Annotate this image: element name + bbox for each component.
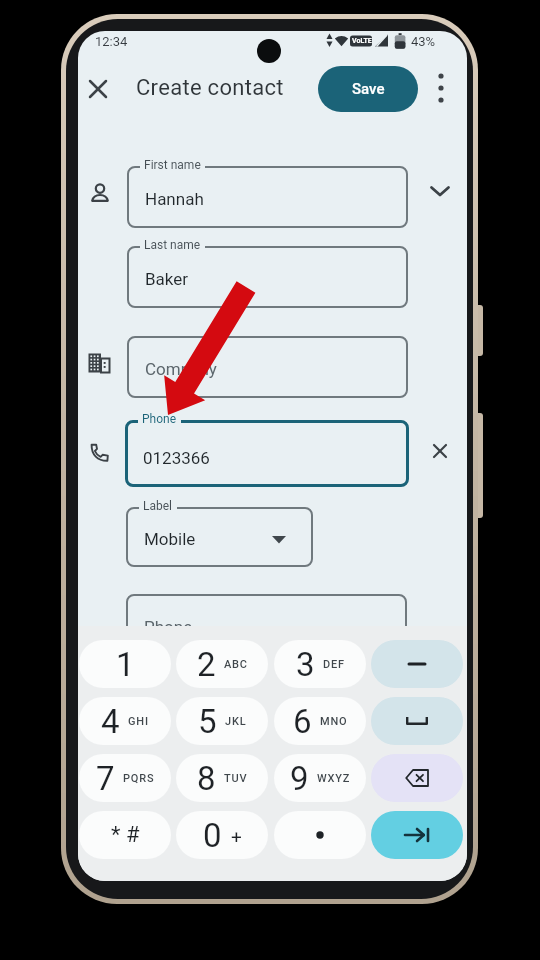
staticText: 8 [197,759,216,798]
staticText: TUV [224,772,248,785]
staticText: First name [144,158,201,172]
staticText: Mobile [144,529,196,549]
staticText: WXYZ [317,772,351,785]
button[interactable]: 3 [274,640,366,688]
staticText: 6 [293,702,312,741]
staticText: 1 [116,645,135,684]
button[interactable]: Mobile [126,507,313,567]
staticText: 4 [101,702,120,741]
staticText: + [231,825,242,847]
staticText: Hannah [145,189,204,209]
button[interactable]: Phone [126,594,407,656]
button[interactable] [371,640,463,688]
staticText: 9 [290,759,309,798]
button[interactable] [84,75,112,103]
button[interactable] [426,179,454,203]
staticText: 2 [197,645,216,684]
staticText: Baker [145,269,189,289]
button[interactable]: 0123366 [125,420,409,487]
staticText: DEF [323,658,345,671]
staticText: Label [143,499,173,513]
staticText: Create contact [136,75,284,101]
staticText: 7 [96,759,115,798]
staticText: * # [111,822,140,848]
button[interactable]: Company [127,336,408,398]
button[interactable]: Baker [127,246,408,308]
button[interactable]: 0 [176,811,268,859]
button[interactable]: 1 [79,640,171,688]
staticText: JKL [225,715,247,728]
button[interactable] [371,697,463,745]
staticText: 5 [198,702,217,741]
staticText: PQRS [123,772,155,785]
button[interactable]: Hannah [127,166,408,228]
button[interactable]: 2 [176,640,268,688]
staticText: MNO [320,715,348,728]
button[interactable] [428,439,452,463]
button[interactable] [429,70,453,108]
button[interactable]: * # [79,811,171,859]
staticText: Last name [144,238,201,252]
button[interactable]: 7 [79,754,171,802]
button[interactable] [371,811,463,859]
staticText: Save [352,80,385,98]
staticText: Phone [144,617,193,637]
button[interactable]: 6 [274,697,366,745]
button[interactable]: 8 [176,754,268,802]
staticText: 12:34 [95,34,128,49]
staticText: 3 [296,645,315,684]
staticText: 0 [203,816,222,855]
staticText: ABC [224,658,248,671]
button[interactable]: 5 [176,697,268,745]
button[interactable]: 4 [79,697,171,745]
staticText: 0123366 [143,448,210,468]
button[interactable]: 9 [274,754,366,802]
button[interactable] [274,811,366,859]
button[interactable]: Save [318,66,418,112]
button[interactable] [371,754,463,802]
staticText: Company [145,359,217,379]
staticText: VoLTE [352,37,372,45]
staticText: 43% [411,34,436,49]
staticText: GHI [128,715,149,728]
staticText: Phone [142,412,177,426]
